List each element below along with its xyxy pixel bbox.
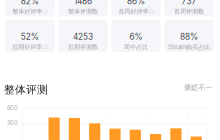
staticText: 600 [7,105,18,111]
staticText: 简中占比 [124,43,148,51]
button[interactable]: 86% [111,0,161,16]
staticText: 52% [21,32,39,42]
staticText: 首周好评率 [118,8,148,15]
staticText: 褒贬不一 [184,83,212,92]
button[interactable]: 6% [111,20,161,52]
staticText: 近期好评率 [12,43,42,51]
staticText: 6% [129,32,142,42]
staticText: 82% [21,0,39,6]
staticText: 1486 [74,0,92,6]
staticText: 4253 [73,32,93,42]
button[interactable]: 52% [5,20,55,52]
staticText: 300 [7,120,18,126]
staticText: 整体评测 [4,83,48,96]
staticText: 737 [182,0,197,6]
staticText: Steam购买占比 [168,43,210,51]
button[interactable]: 4253 [58,20,108,52]
button[interactable]: 1486 [58,0,108,16]
staticText: 近期评测数 [68,43,98,51]
button[interactable]: 82% [5,0,55,16]
button[interactable]: 88% [164,20,214,52]
staticText: 86% [127,0,145,6]
staticText: 首周评测数 [174,8,204,15]
button[interactable]: 737 [164,0,214,16]
staticText: 整体评测数 [68,8,98,15]
staticText: 整体好评率 [12,8,42,15]
staticText: 88% [180,32,198,42]
